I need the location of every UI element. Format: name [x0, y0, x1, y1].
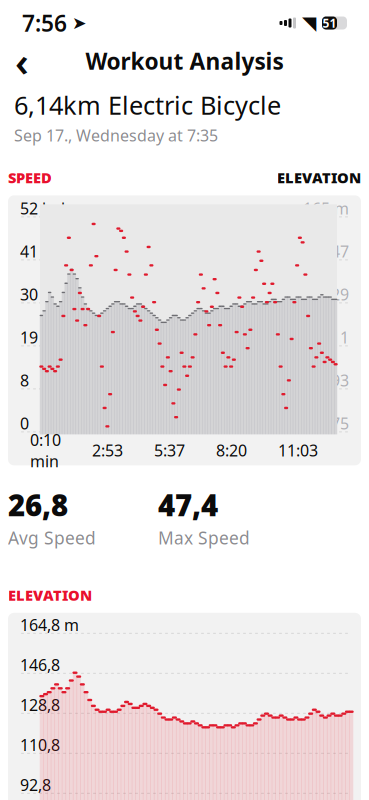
staticText: SPEED — [8, 168, 52, 187]
staticText: 47,4 — [158, 485, 218, 524]
staticText: 8:20 — [216, 440, 247, 461]
staticText: 0 — [20, 413, 29, 434]
staticText: 75 — [331, 413, 349, 434]
staticText: 7:56 — [22, 8, 67, 38]
staticText: 26,8 — [8, 485, 68, 524]
staticText: 92,8 — [20, 774, 51, 795]
staticText: 30 — [20, 284, 38, 305]
staticText: ELEVATION — [277, 168, 361, 187]
staticText: 128,8 — [20, 694, 60, 715]
staticText: 165 m — [303, 198, 349, 219]
staticText: 11:03 — [278, 440, 318, 461]
staticText: 111 — [322, 327, 349, 348]
staticText: 93 — [331, 370, 349, 391]
staticText: 6,14km Electric Bicycle — [14, 88, 281, 122]
staticText: Sep 17., Wednesday at 7:35 — [14, 125, 218, 146]
staticText: 0:10 min — [30, 429, 61, 472]
staticText: 8 — [20, 370, 29, 391]
staticText: 129 — [322, 284, 349, 305]
staticText: 51 — [322, 15, 336, 31]
staticText: 164,8 m — [20, 614, 79, 635]
staticText: 19 — [20, 327, 38, 348]
button[interactable]: Back — [0, 44, 44, 78]
staticText: Avg Speed — [8, 526, 96, 549]
staticText: 41 — [20, 241, 38, 262]
staticText: ELEVATION — [8, 585, 92, 605]
staticText: ‹ — [15, 34, 29, 87]
staticText: 146,8 — [20, 654, 60, 675]
staticText: 5:37 — [154, 440, 185, 461]
staticText: Workout Analysis — [85, 46, 283, 76]
staticText: Max Speed — [158, 526, 250, 549]
staticText: 2:53 — [92, 440, 123, 461]
staticText: ➤ — [72, 13, 87, 33]
staticText: 147 — [322, 241, 349, 262]
staticText: 52 kph — [20, 198, 71, 219]
staticText: 110,8 — [20, 734, 60, 755]
staticText: ◥ — [302, 12, 316, 34]
